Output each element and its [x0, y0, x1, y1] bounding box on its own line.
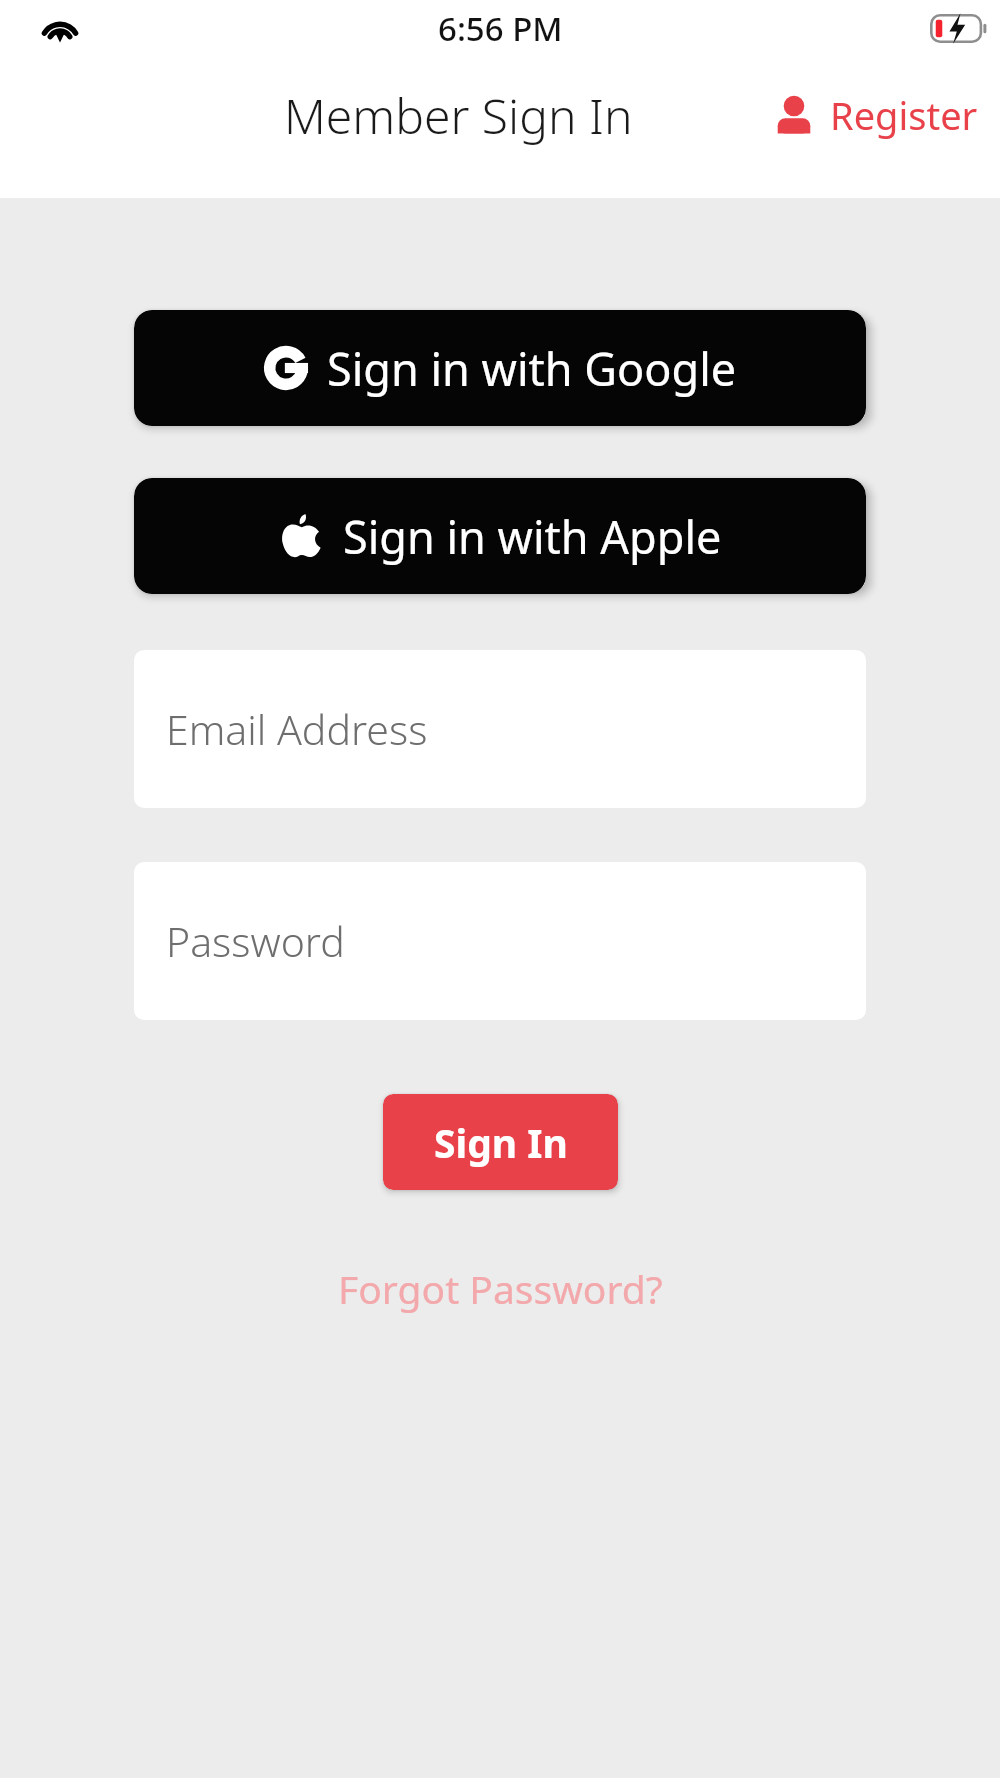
button[interactable]: Sign in with Apple [134, 478, 866, 594]
staticText: Member Sign In [284, 83, 633, 148]
button[interactable]: Register [762, 81, 1000, 149]
staticText: Sign in with Apple [343, 506, 722, 567]
button[interactable]: Email Address [134, 650, 866, 808]
button[interactable]: Sign in with Google [134, 310, 866, 426]
button[interactable]: Password [134, 862, 866, 1020]
staticText: Forgot Password? [338, 1262, 663, 1315]
staticText: Sign In [434, 1116, 568, 1169]
staticText: Sign in with Google [327, 338, 737, 399]
other: Register [772, 94, 816, 136]
staticText: Password [166, 913, 345, 969]
button[interactable]: Forgot Password? [324, 1252, 677, 1325]
staticText: Email Address [166, 701, 428, 757]
staticText: 6:56 PM [438, 6, 563, 51]
button[interactable]: Sign In [383, 1094, 618, 1190]
staticText: Register [830, 89, 978, 141]
